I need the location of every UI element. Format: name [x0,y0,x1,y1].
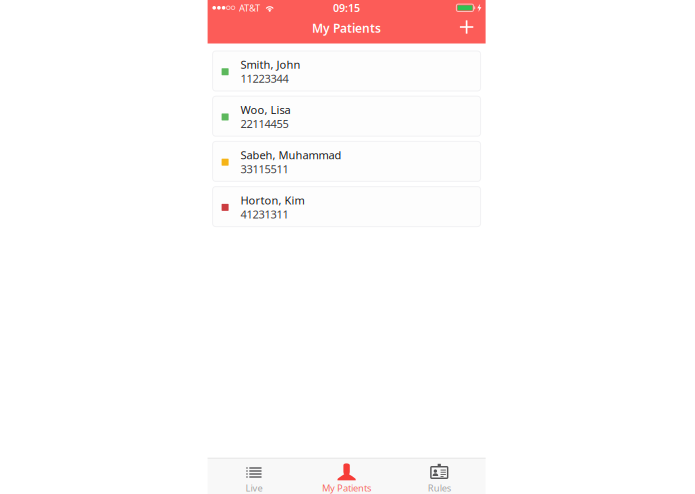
button[interactable]: Horton, Kim [213,187,481,227]
button[interactable]: My Patients [300,458,393,494]
staticText: Woo, Lisa [241,102,291,117]
staticText: My Patients [312,20,381,36]
button[interactable]: Sabeh, Muhammad [213,141,481,181]
staticText: Smith, John [241,57,301,72]
staticText: 33115511 [241,162,289,176]
staticText: Horton, Kim [241,193,305,207]
staticText: 11223344 [241,71,289,86]
staticText: Rules [428,482,451,494]
button[interactable]: Smith, John [213,51,481,91]
staticText: Sabeh, Muhammad [241,148,342,162]
button[interactable]: Rules [393,458,486,494]
staticText: Live [245,482,262,494]
staticText: 41231311 [241,207,289,221]
button[interactable]: Woo, Lisa [213,96,481,136]
staticText: 22114455 [241,116,289,131]
staticText: AT&T [239,2,260,14]
button[interactable]: Add patient [454,18,480,36]
staticText: My Patients [322,482,371,494]
staticText: 09:15 [333,1,360,15]
button[interactable]: Live [208,458,300,494]
